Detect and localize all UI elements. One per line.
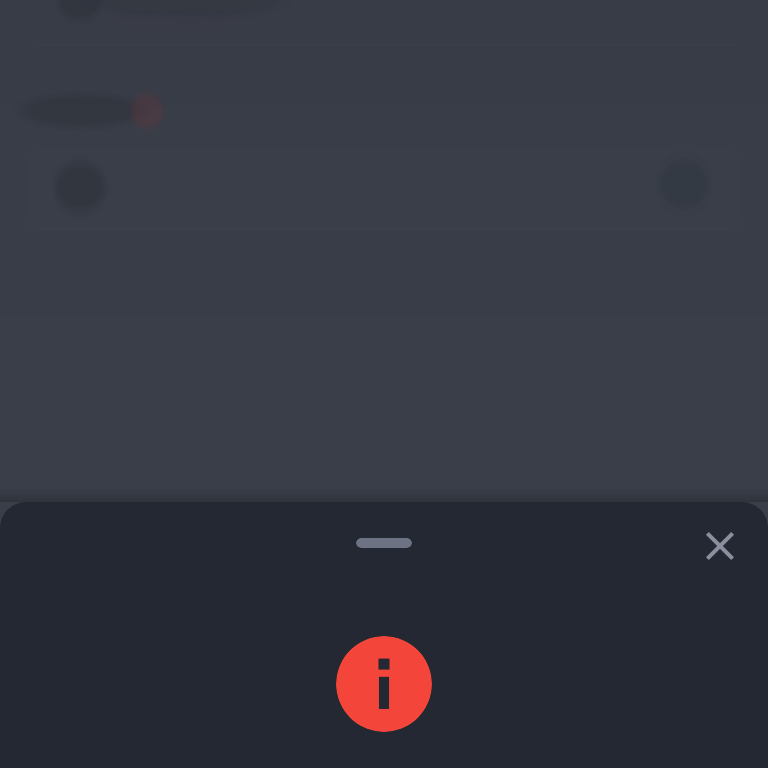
button[interactable]: Drag handle — [356, 538, 412, 548]
button[interactable]: Information — [336, 636, 432, 732]
button[interactable]: Close — [692, 518, 748, 574]
